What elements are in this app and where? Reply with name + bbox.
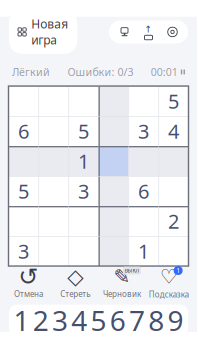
button[interactable]: Поделиться <box>143 26 154 37</box>
button[interactable]: 3 <box>128 116 158 146</box>
staticText: 2 <box>33 302 49 339</box>
staticText: ♡ <box>160 265 178 288</box>
button[interactable]: 1 <box>128 236 158 266</box>
staticText: 5 <box>90 302 106 339</box>
button[interactable] <box>38 116 68 146</box>
staticText: 8 <box>148 302 164 339</box>
button[interactable] <box>98 116 128 146</box>
button[interactable]: ◇ <box>52 266 99 299</box>
button[interactable] <box>38 86 68 116</box>
button[interactable]: 4 <box>158 116 188 146</box>
button[interactable]: 6 <box>108 307 127 334</box>
staticText: 3 <box>138 118 149 144</box>
button[interactable] <box>98 236 128 266</box>
staticText: ↑ <box>144 24 152 35</box>
button[interactable]: 5 <box>158 86 188 116</box>
staticText: Отмена <box>14 288 43 299</box>
button[interactable] <box>128 146 158 176</box>
staticText: Ошибки: 0/3 <box>67 65 133 79</box>
staticText: Черновик <box>103 288 141 299</box>
button[interactable]: 4 <box>70 307 89 334</box>
button[interactable] <box>98 86 128 116</box>
staticText: 1 <box>14 302 30 339</box>
staticText: 2 <box>168 208 179 234</box>
button[interactable]: ✎ <box>98 266 145 299</box>
staticText: 9 <box>167 302 183 339</box>
button[interactable]: 5 <box>8 176 38 206</box>
button[interactable]: 1 <box>12 307 31 334</box>
button[interactable] <box>128 206 158 236</box>
button[interactable]: 6 <box>128 176 158 206</box>
staticText: Подсказка <box>149 289 189 300</box>
button[interactable] <box>158 146 188 176</box>
button[interactable]: 3 <box>68 176 98 206</box>
button[interactable]: 5 <box>89 307 108 334</box>
button[interactable]: 3 <box>8 236 38 266</box>
button[interactable]: 8 <box>147 307 166 334</box>
staticText: 4 <box>71 302 87 339</box>
button[interactable] <box>38 236 68 266</box>
button[interactable] <box>68 86 98 116</box>
button[interactable]: ♡ <box>145 266 192 300</box>
button[interactable]: 1 <box>68 146 98 176</box>
staticText: Стереть <box>60 288 90 299</box>
button[interactable]: 6 <box>8 116 38 146</box>
staticText: 6 <box>18 118 29 144</box>
button[interactable]: ↺ <box>5 266 52 299</box>
staticText: 5 <box>18 178 29 204</box>
staticText: 1 <box>78 148 89 174</box>
button[interactable] <box>38 146 68 176</box>
button[interactable] <box>8 146 38 176</box>
staticText: 1 <box>176 266 180 275</box>
staticText: ✎ <box>113 265 130 288</box>
staticText: 7 <box>129 302 145 339</box>
button[interactable] <box>98 206 128 236</box>
button[interactable] <box>68 206 98 236</box>
button[interactable]: 2 <box>158 206 188 236</box>
button[interactable] <box>8 206 38 236</box>
staticText: 3 <box>18 238 29 264</box>
button[interactable] <box>158 236 188 266</box>
staticText: 4 <box>168 118 179 144</box>
button[interactable]: Статистика <box>119 26 130 37</box>
button[interactable] <box>98 146 128 176</box>
button[interactable]: Настройки <box>167 26 178 37</box>
staticText: 1 <box>138 238 149 264</box>
button[interactable]: 2 <box>31 307 50 334</box>
staticText: ВЫКЛ <box>124 267 139 274</box>
button[interactable]: 7 <box>127 307 146 334</box>
staticText: Лёгкий <box>12 65 50 79</box>
staticText: 6 <box>138 178 149 204</box>
button[interactable]: Новая игра <box>9 10 77 54</box>
button[interactable]: 9 <box>166 307 185 334</box>
button[interactable] <box>8 86 38 116</box>
staticText: 00:01 <box>151 65 178 79</box>
staticText: 5 <box>78 118 89 144</box>
staticText: ↺ <box>18 263 38 290</box>
staticText: 3 <box>78 178 89 204</box>
button[interactable]: 5 <box>68 116 98 146</box>
button[interactable] <box>158 176 188 206</box>
staticText: ◇ <box>67 264 83 289</box>
button[interactable] <box>38 206 68 236</box>
button[interactable]: 3 <box>50 307 70 334</box>
button[interactable] <box>98 176 128 206</box>
staticText: 6 <box>110 302 126 339</box>
button[interactable] <box>128 86 158 116</box>
staticText: Новая игра <box>31 16 68 48</box>
button[interactable] <box>68 236 98 266</box>
button[interactable] <box>38 176 68 206</box>
staticText: 3 <box>52 302 68 339</box>
staticText: 5 <box>168 88 179 114</box>
button[interactable]: 00:01 <box>151 65 185 79</box>
